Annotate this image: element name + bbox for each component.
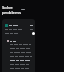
button[interactable]: Selected — [2, 19, 35, 72]
button[interactable]: Selected — [32, 32, 35, 35]
staticText: problems — [2, 10, 21, 16]
staticText: Solve — [2, 5, 13, 11]
